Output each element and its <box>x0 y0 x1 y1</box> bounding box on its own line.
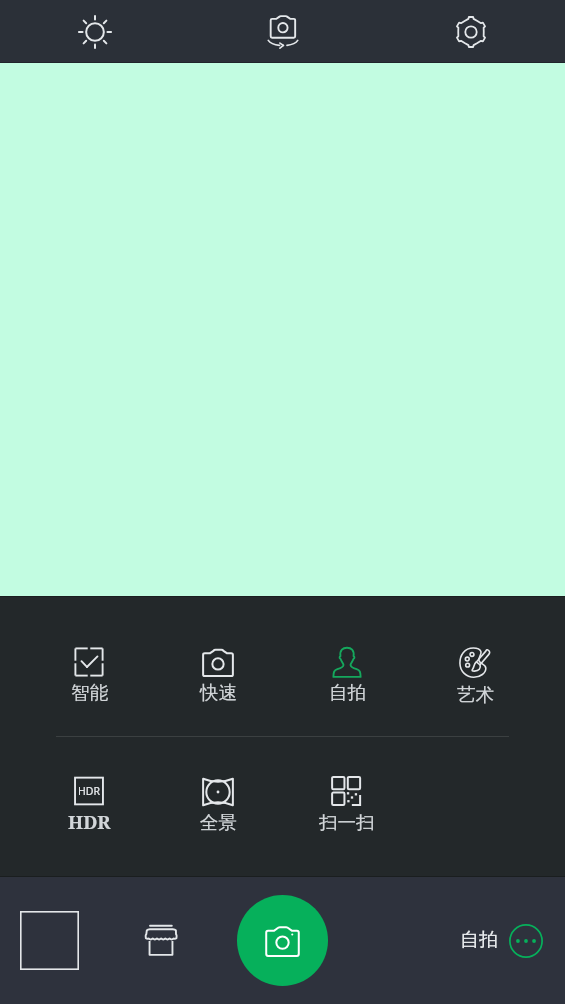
button[interactable]: Store <box>135 915 187 967</box>
button[interactable]: HDR <box>39 770 139 834</box>
staticText: 自拍 <box>460 928 498 952</box>
button[interactable]: 艺术 <box>425 639 525 706</box>
staticText: HDR <box>78 784 100 798</box>
button[interactable]: 扫一扫 <box>297 770 397 834</box>
button[interactable]: 自拍 <box>455 921 503 959</box>
staticText: 全景 <box>200 811 237 834</box>
staticText: 自拍 <box>329 681 366 704</box>
button[interactable]: 快速 <box>168 640 268 704</box>
staticText: HDR <box>68 809 111 834</box>
staticText: 智能 <box>71 681 108 704</box>
button[interactable]: 智能 <box>39 640 139 704</box>
staticText: 扫一扫 <box>319 811 375 834</box>
button[interactable]: More options <box>507 922 544 959</box>
button[interactable]: Take photo <box>237 895 328 986</box>
staticText: 艺术 <box>457 683 494 706</box>
button[interactable]: 自拍 <box>297 640 397 704</box>
button[interactable]: Settings <box>377 0 565 63</box>
button[interactable]: Switch camera <box>189 0 377 63</box>
staticText: 快速 <box>200 681 237 704</box>
button[interactable]: Gallery <box>20 911 79 970</box>
button[interactable]: Brightness <box>0 0 189 63</box>
button[interactable]: 全景 <box>168 770 268 834</box>
